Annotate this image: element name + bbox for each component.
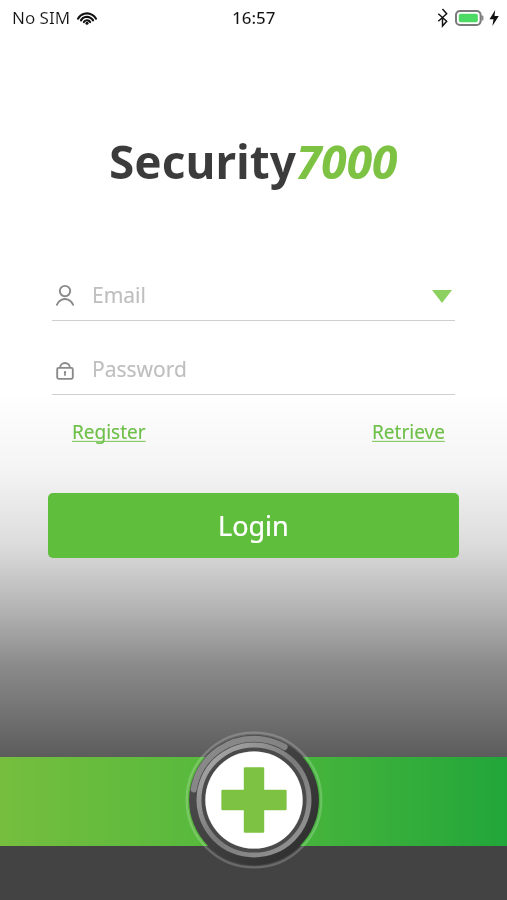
button[interactable]: Retrieve bbox=[372, 419, 445, 445]
staticText: Login bbox=[218, 507, 289, 544]
staticText: 16:57 bbox=[232, 6, 276, 29]
button[interactable]: Email bbox=[52, 281, 455, 321]
button[interactable]: Show saved emails bbox=[429, 283, 455, 309]
button[interactable]: Password bbox=[52, 355, 455, 395]
button[interactable]: Register bbox=[72, 419, 146, 445]
staticText: 7000 bbox=[296, 130, 398, 193]
staticText: Email bbox=[92, 281, 146, 310]
staticText: Password bbox=[92, 355, 187, 384]
staticText: No SIM bbox=[12, 6, 71, 29]
button[interactable]: Login bbox=[48, 493, 459, 558]
staticText: Register bbox=[72, 419, 146, 445]
staticText: Retrieve bbox=[372, 419, 445, 445]
button[interactable]: Add bbox=[186, 732, 322, 868]
staticText: Security bbox=[109, 130, 296, 193]
